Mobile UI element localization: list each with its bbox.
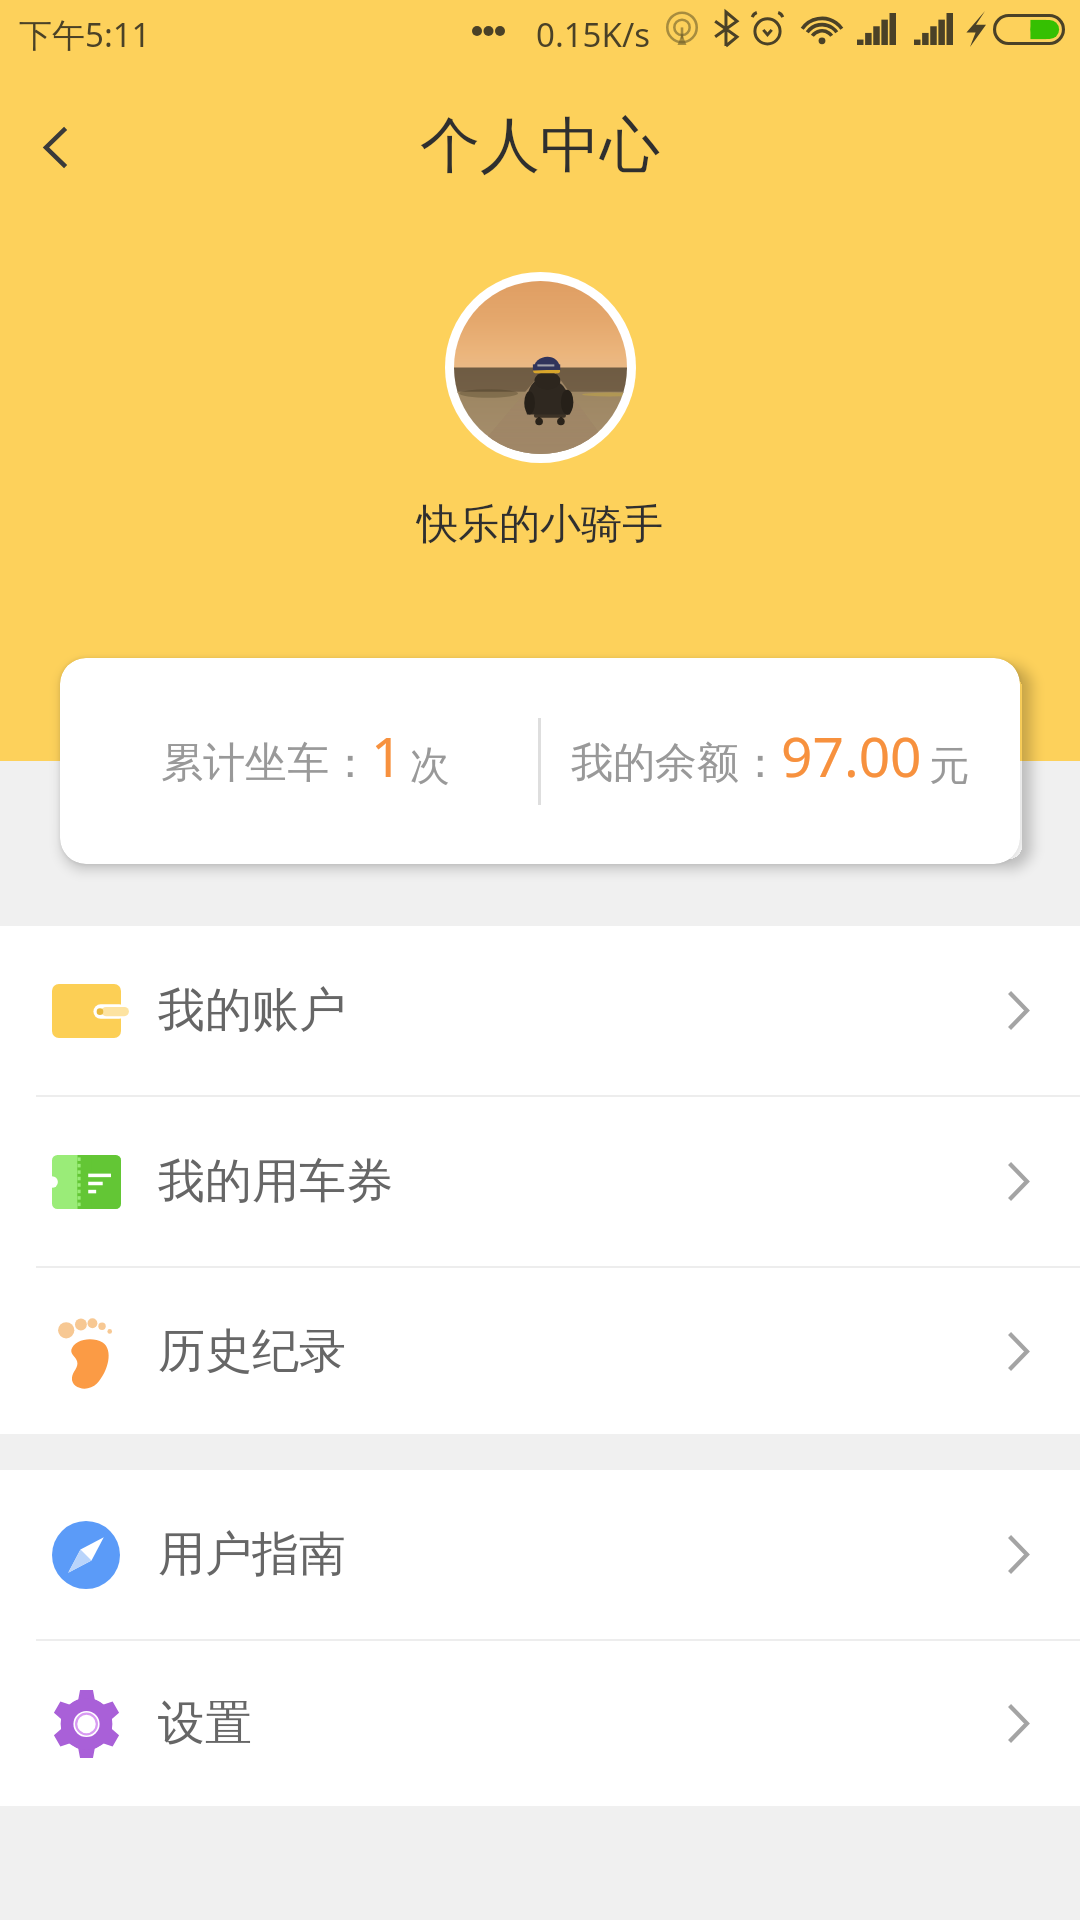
staticText: 元 [929, 740, 969, 790]
staticText: 1 [371, 718, 403, 793]
staticText: 我的账户 [158, 981, 346, 1040]
staticText: 97.00 [781, 718, 922, 793]
button[interactable]: 我的用车券 [0, 1097, 1080, 1266]
staticText: 我的余额： [571, 737, 781, 790]
button[interactable]: Profile photo [445, 272, 636, 463]
button[interactable]: Back [10, 102, 100, 192]
button[interactable]: 历史纪录 [0, 1268, 1080, 1434]
button[interactable]: 设置 [0, 1641, 1080, 1806]
staticText: 快乐的小骑手 [417, 499, 663, 551]
button[interactable]: 用户指南 [0, 1470, 1080, 1639]
staticText: 个人中心 [420, 108, 660, 184]
staticText: 0.15K/s [536, 12, 650, 57]
staticText: 下午5:11 [19, 12, 151, 57]
staticText: 历史纪录 [158, 1322, 346, 1381]
staticText: 用户指南 [158, 1525, 346, 1584]
staticText: 我的用车券 [158, 1152, 393, 1211]
staticText: 次 [410, 740, 450, 790]
button[interactable]: 我的账户 [0, 926, 1080, 1095]
staticText: 设置 [158, 1694, 252, 1753]
staticText: 累计坐车： [161, 737, 371, 790]
